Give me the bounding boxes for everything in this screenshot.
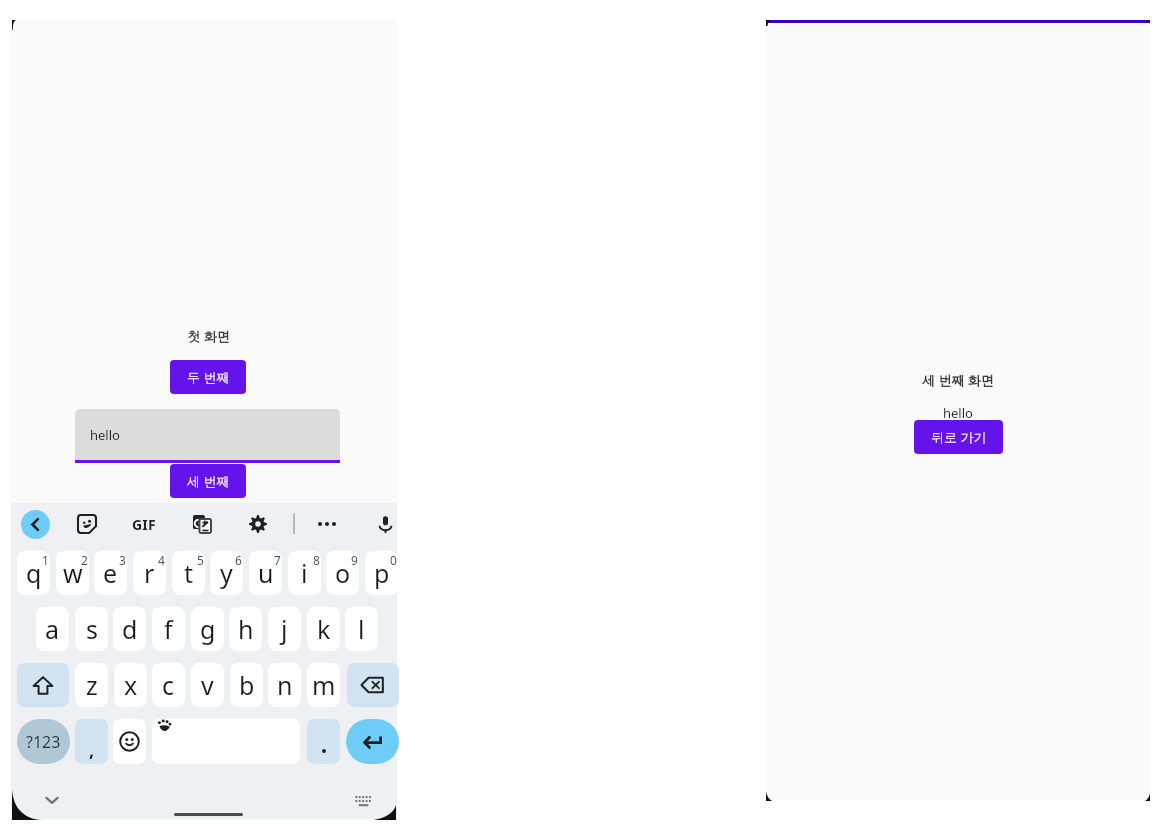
button[interactable]: Voice input xyxy=(378,515,393,534)
staticText: w xyxy=(63,556,83,590)
staticText: j xyxy=(281,612,288,646)
staticText: , xyxy=(89,738,95,763)
button[interactable]: Shift xyxy=(17,663,69,707)
button[interactable]: Stickers xyxy=(78,515,96,533)
button[interactable]: r xyxy=(133,551,166,595)
staticText: o xyxy=(335,556,351,590)
staticText: 첫 화면 xyxy=(187,327,230,345)
button[interactable]: Space xyxy=(152,719,300,764)
staticText: 5 xyxy=(197,552,204,568)
staticText: d xyxy=(122,612,138,646)
button[interactable]: Switch keyboard xyxy=(352,790,374,812)
button[interactable]: GIF xyxy=(130,512,158,537)
button[interactable]: Settings xyxy=(249,515,267,533)
staticText: a xyxy=(45,612,60,646)
button[interactable]: Backspace xyxy=(347,663,399,707)
button[interactable]: i xyxy=(288,551,321,595)
staticText: x xyxy=(124,668,138,702)
button[interactable]: h xyxy=(229,607,262,651)
button[interactable]: d xyxy=(113,607,146,651)
button[interactable]: 뒤로 가기 xyxy=(914,420,1003,454)
staticText: e xyxy=(103,556,118,590)
staticText: 0 xyxy=(390,552,397,568)
button[interactable]: f xyxy=(152,607,185,651)
button[interactable] xyxy=(307,719,340,764)
button[interactable]: a xyxy=(36,607,69,651)
staticText: b xyxy=(239,668,255,702)
button[interactable]: z xyxy=(75,663,108,707)
button[interactable]: e xyxy=(94,551,127,595)
button[interactable]: l xyxy=(345,607,378,651)
button[interactable]: n xyxy=(268,663,301,707)
staticText: 2 xyxy=(81,552,88,568)
button[interactable]: k xyxy=(307,607,340,651)
button[interactable]: 세 번째 xyxy=(170,464,246,498)
button[interactable]: Back xyxy=(21,510,50,539)
staticText: v xyxy=(201,668,214,702)
button[interactable]: c xyxy=(152,663,185,707)
staticText: y xyxy=(220,556,233,590)
staticText: 세 번째 화면 xyxy=(922,371,994,389)
staticText: n xyxy=(277,668,293,702)
button[interactable]: t xyxy=(172,551,205,595)
staticText: c xyxy=(162,668,175,702)
staticText: 세 번째 xyxy=(187,472,230,490)
staticText: z xyxy=(86,668,98,702)
staticText: l xyxy=(358,612,365,646)
button[interactable]: y xyxy=(210,551,243,595)
button[interactable]: v xyxy=(191,663,224,707)
button[interactable]: , xyxy=(75,719,108,764)
button[interactable]: w xyxy=(56,551,89,595)
staticText: 6 xyxy=(235,552,242,568)
staticText: 1 xyxy=(42,552,49,568)
staticText: 4 xyxy=(158,552,165,568)
staticText: 8 xyxy=(313,552,320,568)
button[interactable]: Enter xyxy=(346,719,399,764)
staticText: ?123 xyxy=(26,731,61,753)
staticText: m xyxy=(312,668,336,702)
button[interactable]: x xyxy=(114,663,147,707)
button[interactable]: Hide keyboard xyxy=(41,789,63,811)
staticText: g xyxy=(200,612,216,646)
staticText: hello xyxy=(943,404,973,422)
staticText: 7 xyxy=(274,552,281,568)
staticText: s xyxy=(86,612,98,646)
staticText: t xyxy=(184,556,194,590)
staticText: p xyxy=(374,556,390,590)
button[interactable]: j xyxy=(268,607,301,651)
staticText: hello xyxy=(90,426,120,444)
button[interactable]: q xyxy=(17,551,50,595)
staticText: i xyxy=(301,556,308,590)
staticText: 3 xyxy=(119,552,126,568)
button[interactable]: Emoji xyxy=(113,719,146,764)
button[interactable]: s xyxy=(75,607,108,651)
staticText: h xyxy=(238,612,254,646)
staticText: f xyxy=(164,612,173,646)
staticText: GIF xyxy=(132,515,156,534)
staticText: u xyxy=(258,556,274,590)
staticText: k xyxy=(317,612,331,646)
staticText: q xyxy=(26,556,42,590)
staticText: 뒤로 가기 xyxy=(931,428,987,446)
staticText: r xyxy=(144,556,155,590)
button[interactable]: o xyxy=(326,551,359,595)
staticText: 두 번째 xyxy=(187,368,230,386)
button[interactable]: m xyxy=(307,663,340,707)
staticText: 9 xyxy=(351,552,358,568)
button[interactable]: g xyxy=(191,607,224,651)
button[interactable]: b xyxy=(230,663,263,707)
button[interactable]: ?123 xyxy=(17,719,70,764)
button[interactable]: p xyxy=(365,551,398,595)
button[interactable]: 두 번째 xyxy=(170,360,246,394)
button[interactable]: hello xyxy=(75,409,340,460)
button[interactable]: More options xyxy=(316,514,338,534)
button[interactable]: u xyxy=(249,551,282,595)
button[interactable]: Translate xyxy=(193,515,211,533)
